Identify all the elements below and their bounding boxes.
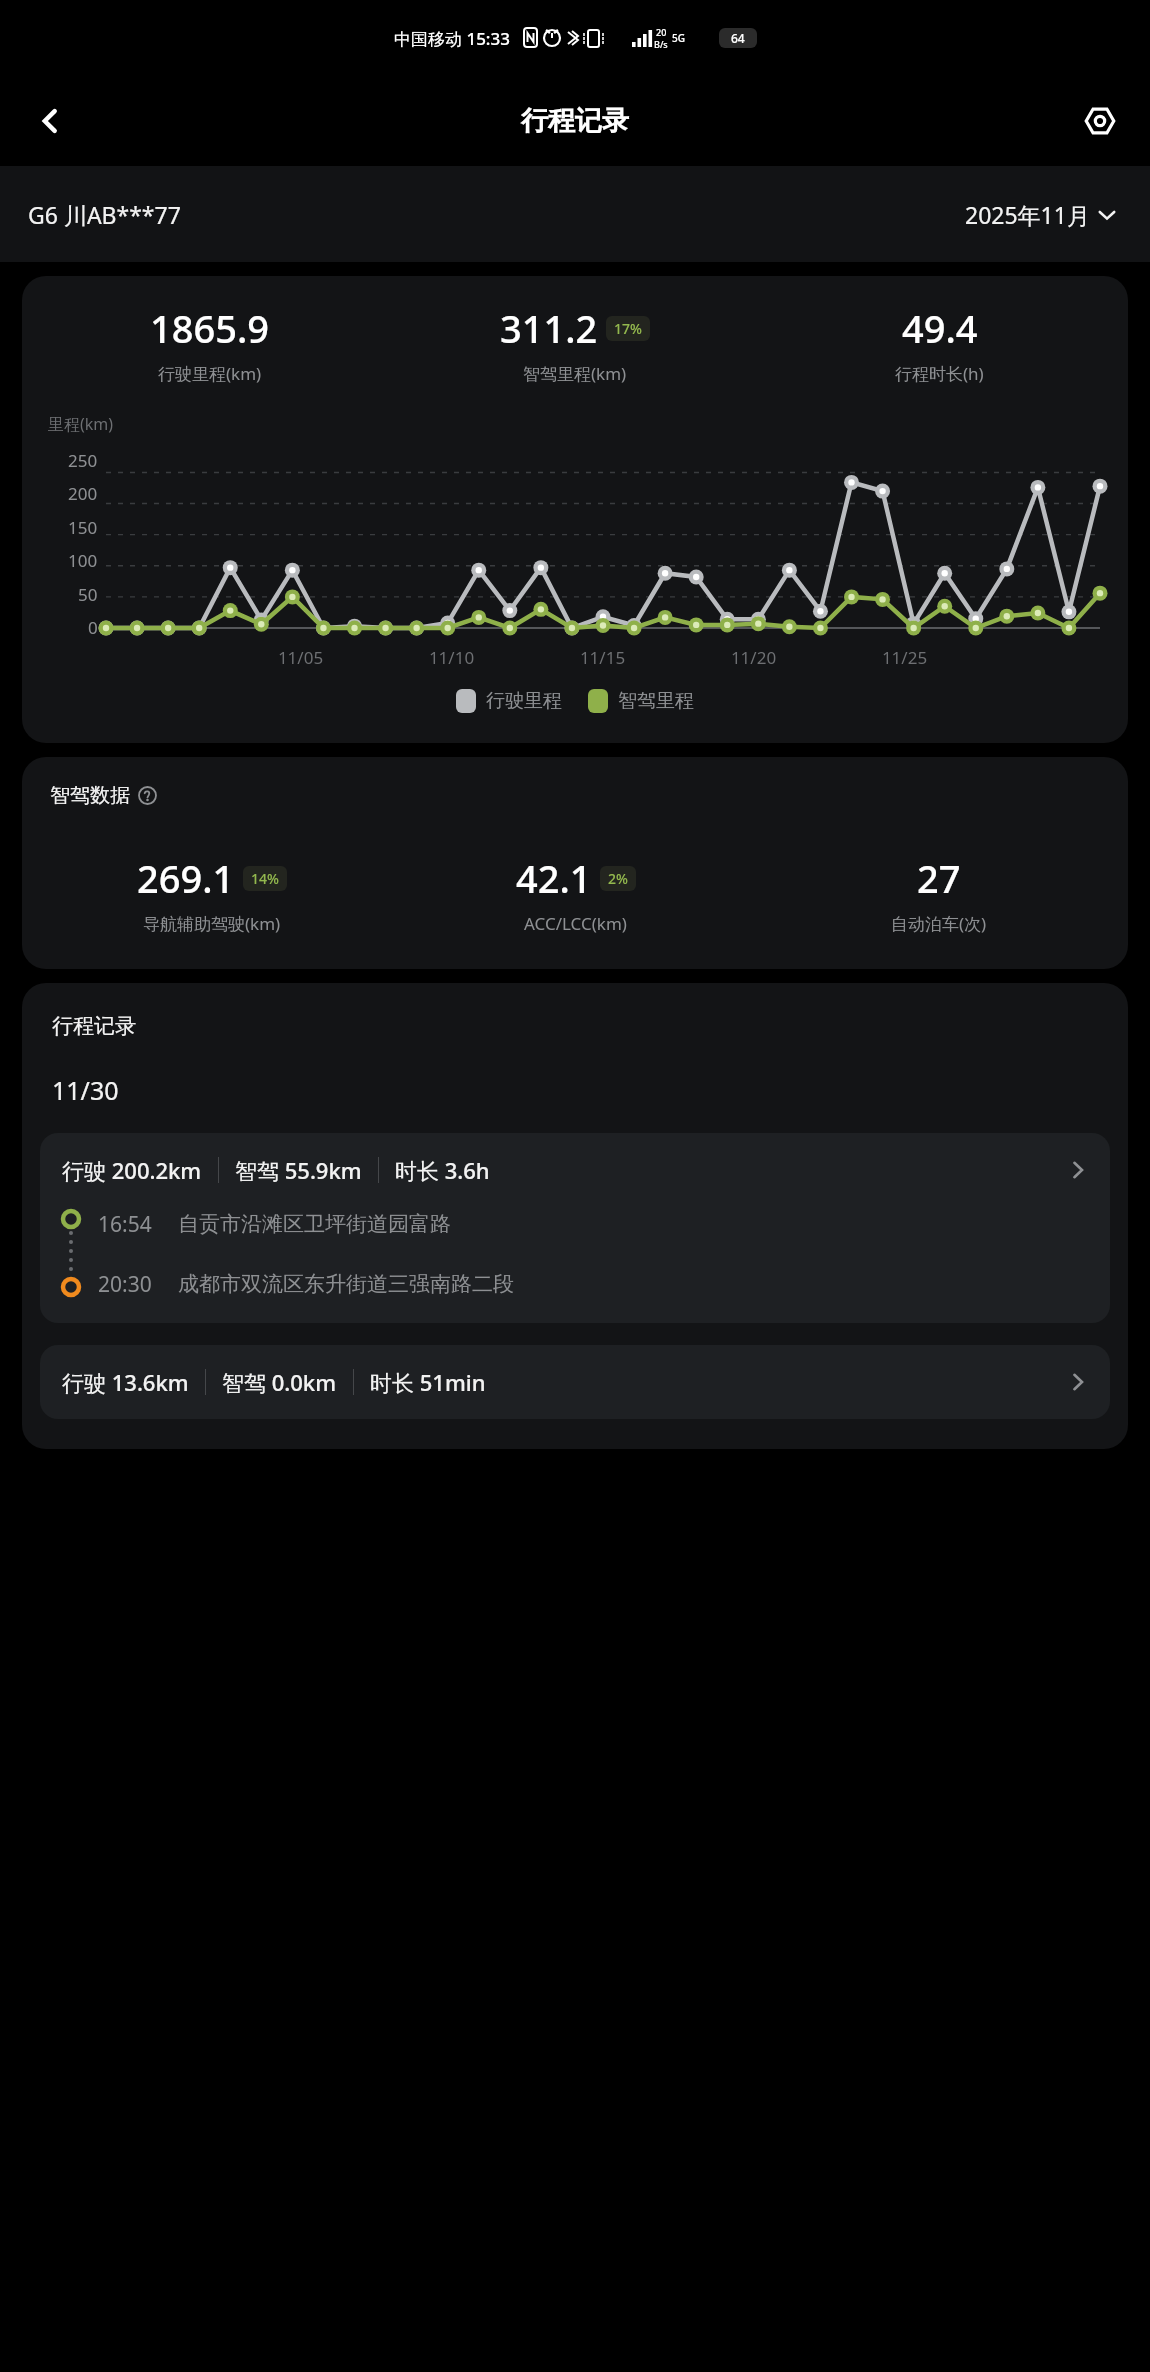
button[interactable]: 2025年11月 [959, 193, 1122, 236]
staticText: 11/25 [829, 646, 980, 669]
staticText: 中国移动 15:33 [394, 27, 510, 50]
staticText: 200 [68, 482, 98, 505]
staticText: 导航辅助驾驶(km) [143, 912, 281, 935]
staticText: 11/15 [527, 646, 678, 669]
staticText: 行驶里程(km) [158, 362, 262, 385]
staticText: 20:30 [98, 1270, 152, 1299]
staticText: 20 [656, 26, 667, 38]
button[interactable]: Back [22, 93, 78, 149]
staticText: 42.1 [516, 852, 592, 904]
staticText: 14% [251, 869, 279, 888]
staticText: 16:54 [98, 1210, 152, 1239]
staticText: 行驶 13.6km [62, 1367, 189, 1397]
staticText: 智驾里程(km) [523, 362, 627, 385]
staticText: 智驾 0.0km [222, 1367, 337, 1397]
staticText: 行程记录 [52, 1013, 136, 1039]
button[interactable]: 行驶 200.2km [40, 1133, 1110, 1323]
staticText: 0 [88, 616, 98, 639]
staticText: 64 [731, 30, 745, 46]
staticText: 269.1 [137, 852, 235, 904]
staticText: 成都市双流区东升街道三强南路二段 [178, 1271, 514, 1297]
staticText: 2025年11月 [965, 199, 1090, 230]
staticText: 行程时长(h) [895, 362, 984, 385]
staticText: G6 川AB***77 [28, 199, 181, 230]
staticText: 49.4 [902, 302, 978, 354]
button[interactable]: 智驾数据 [22, 757, 1128, 969]
staticText: 5G [672, 31, 685, 45]
staticText: 100 [68, 549, 98, 572]
staticText: 自贡市沿滩区卫坪街道园富路 [178, 1211, 451, 1237]
staticText: 17% [614, 319, 642, 338]
button[interactable]: 行驶 13.6km [40, 1345, 1110, 1419]
staticText: 时长 51min [370, 1367, 486, 1397]
staticText: 里程(km) [48, 413, 114, 435]
button[interactable]: 1865.9 [22, 276, 1128, 743]
staticText: 11/05 [225, 646, 376, 669]
staticText: B/s [654, 38, 668, 50]
button[interactable]: 智驾数据 [50, 783, 157, 808]
staticText: 150 [68, 516, 98, 539]
staticText: 智驾数据 [50, 783, 130, 808]
staticText: 智驾里程 [618, 689, 694, 713]
staticText: 50 [78, 583, 98, 606]
staticText: 行程记录 [521, 104, 629, 138]
staticText: 时长 3.6h [395, 1155, 490, 1185]
staticText: 11/20 [678, 646, 829, 669]
staticText: 311.2 [500, 302, 598, 354]
other: Help [138, 786, 157, 805]
staticText: 行驶里程 [486, 689, 562, 713]
staticText: 11/30 [52, 1073, 119, 1107]
staticText: 行驶 200.2km [62, 1155, 202, 1185]
staticText: 智驾 55.9km [235, 1155, 362, 1185]
staticText: 11/10 [376, 646, 527, 669]
staticText: 自动泊车(次) [891, 912, 987, 935]
staticText: 250 [68, 449, 98, 472]
staticText: 1865.9 [150, 302, 270, 354]
staticText: ACC/LCC(km) [524, 912, 627, 935]
staticText: 2% [608, 869, 628, 888]
button[interactable]: Settings [1072, 93, 1128, 149]
staticText: 27 [917, 852, 961, 904]
